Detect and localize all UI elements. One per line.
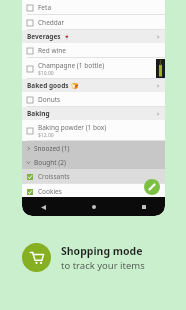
button[interactable]: Red wine <box>22 43 165 58</box>
button[interactable]: Shopping mode <box>22 243 145 272</box>
staticText: Croissants <box>38 172 70 181</box>
button[interactable]: Edit <box>144 179 160 195</box>
button[interactable]: Cookies <box>22 184 165 199</box>
button[interactable]: Bought (2) <box>22 155 165 169</box>
button[interactable]: Baked goods <box>22 79 165 92</box>
staticText: Baked goods <box>27 81 69 90</box>
staticText: Cheddar <box>38 18 65 27</box>
button[interactable]: Baking <box>22 107 165 120</box>
button[interactable]: Cheddar <box>22 15 165 30</box>
staticText: 🍞 <box>71 82 79 89</box>
staticText: Shopping mode <box>61 244 143 258</box>
button[interactable]: Snoozed (1) <box>22 141 165 155</box>
button[interactable]: Home <box>87 200 101 214</box>
staticText: Cookies <box>38 187 62 196</box>
button[interactable]: Champagne (1 bottle) <box>22 58 165 79</box>
button[interactable]: Feta <box>22 0 165 15</box>
staticText: Baking <box>27 109 50 118</box>
staticText: 🍷 <box>63 33 71 40</box>
staticText: Beverages <box>27 32 61 41</box>
staticText: Feta <box>38 3 52 12</box>
button[interactable]: Recents <box>137 200 151 214</box>
button[interactable]: Beverages <box>22 30 165 43</box>
staticText: Baking powder (1 box) <box>38 123 107 132</box>
staticText: Bought (2) <box>34 158 66 167</box>
staticText: Donuts <box>38 95 61 104</box>
staticText: to track your items <box>61 259 145 272</box>
button[interactable]: Donuts <box>22 92 165 107</box>
button[interactable]: Croissants <box>22 169 165 184</box>
staticText: Snoozed (1) <box>34 144 70 153</box>
button[interactable]: Back <box>36 200 50 214</box>
staticText: $12.00 <box>38 132 54 139</box>
staticText: Champagne (1 bottle) <box>38 61 105 70</box>
staticText: $10.00 <box>38 70 54 77</box>
staticText: Red wine <box>38 46 66 55</box>
button[interactable]: Baking powder (1 box) <box>22 120 165 141</box>
